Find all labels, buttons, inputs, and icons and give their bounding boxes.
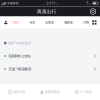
button[interactable]: 出租车 xyxy=(45,16,55,28)
staticText: 52% xyxy=(87,1,92,5)
button[interactable]: 我的行程 xyxy=(0,84,33,100)
staticText: 顺风车 xyxy=(64,20,73,24)
staticText: 中国移动 xyxy=(7,1,19,5)
button[interactable]: 个人里程 xyxy=(67,84,100,100)
button[interactable]: More services xyxy=(92,20,96,25)
staticText: 百家新村-公交站 xyxy=(8,54,30,58)
button[interactable]: 专车 xyxy=(29,16,36,28)
button[interactable]: 快车 xyxy=(13,16,20,28)
staticText: 快车 xyxy=(13,20,19,24)
button[interactable]: Scan QR code xyxy=(90,8,96,14)
staticText: 个人里程 xyxy=(80,90,92,94)
staticText: 出租车 xyxy=(45,20,54,24)
staticText: 万达广场(花桥店) xyxy=(8,67,31,71)
button[interactable]: 代驾 xyxy=(83,16,90,28)
button[interactable]: 推荐给朋友 xyxy=(33,84,67,100)
button[interactable]: 百家新村-公交站 xyxy=(0,50,100,61)
staticText: 推荐给朋友 xyxy=(45,90,60,94)
button[interactable]: Profile xyxy=(4,21,8,24)
button[interactable]: 万达广场(花桥店) xyxy=(0,63,100,74)
button[interactable]: 顺风车 xyxy=(64,16,74,28)
staticText: 最新7分钟前发布 xyxy=(8,41,31,45)
staticText: 滴滴出行 xyxy=(36,8,56,15)
staticText: 上午11:05 xyxy=(46,1,60,5)
staticText: 专车 xyxy=(29,20,35,24)
staticText: 我的行程 xyxy=(13,90,25,94)
staticText: 代驾 xyxy=(83,20,89,24)
